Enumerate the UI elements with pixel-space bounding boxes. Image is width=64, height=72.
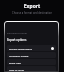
button[interactable]: Include attachments: [7, 45, 56, 51]
button[interactable]: Email copy: [7, 59, 56, 65]
button[interactable]: Save to cloud: [7, 66, 56, 72]
staticText: Export options: [7, 38, 27, 42]
staticText: Choose a format and destination: [0, 11, 64, 15]
staticText: Include attachments: [9, 47, 33, 50]
staticText: Save to cloud: [9, 68, 24, 71]
staticText: Document format: [7, 31, 28, 34]
staticText: Email copy: [9, 61, 21, 64]
staticText: Compress output: [9, 54, 29, 57]
staticText: Export: [0, 3, 64, 10]
button[interactable]: Compress output: [7, 52, 56, 58]
